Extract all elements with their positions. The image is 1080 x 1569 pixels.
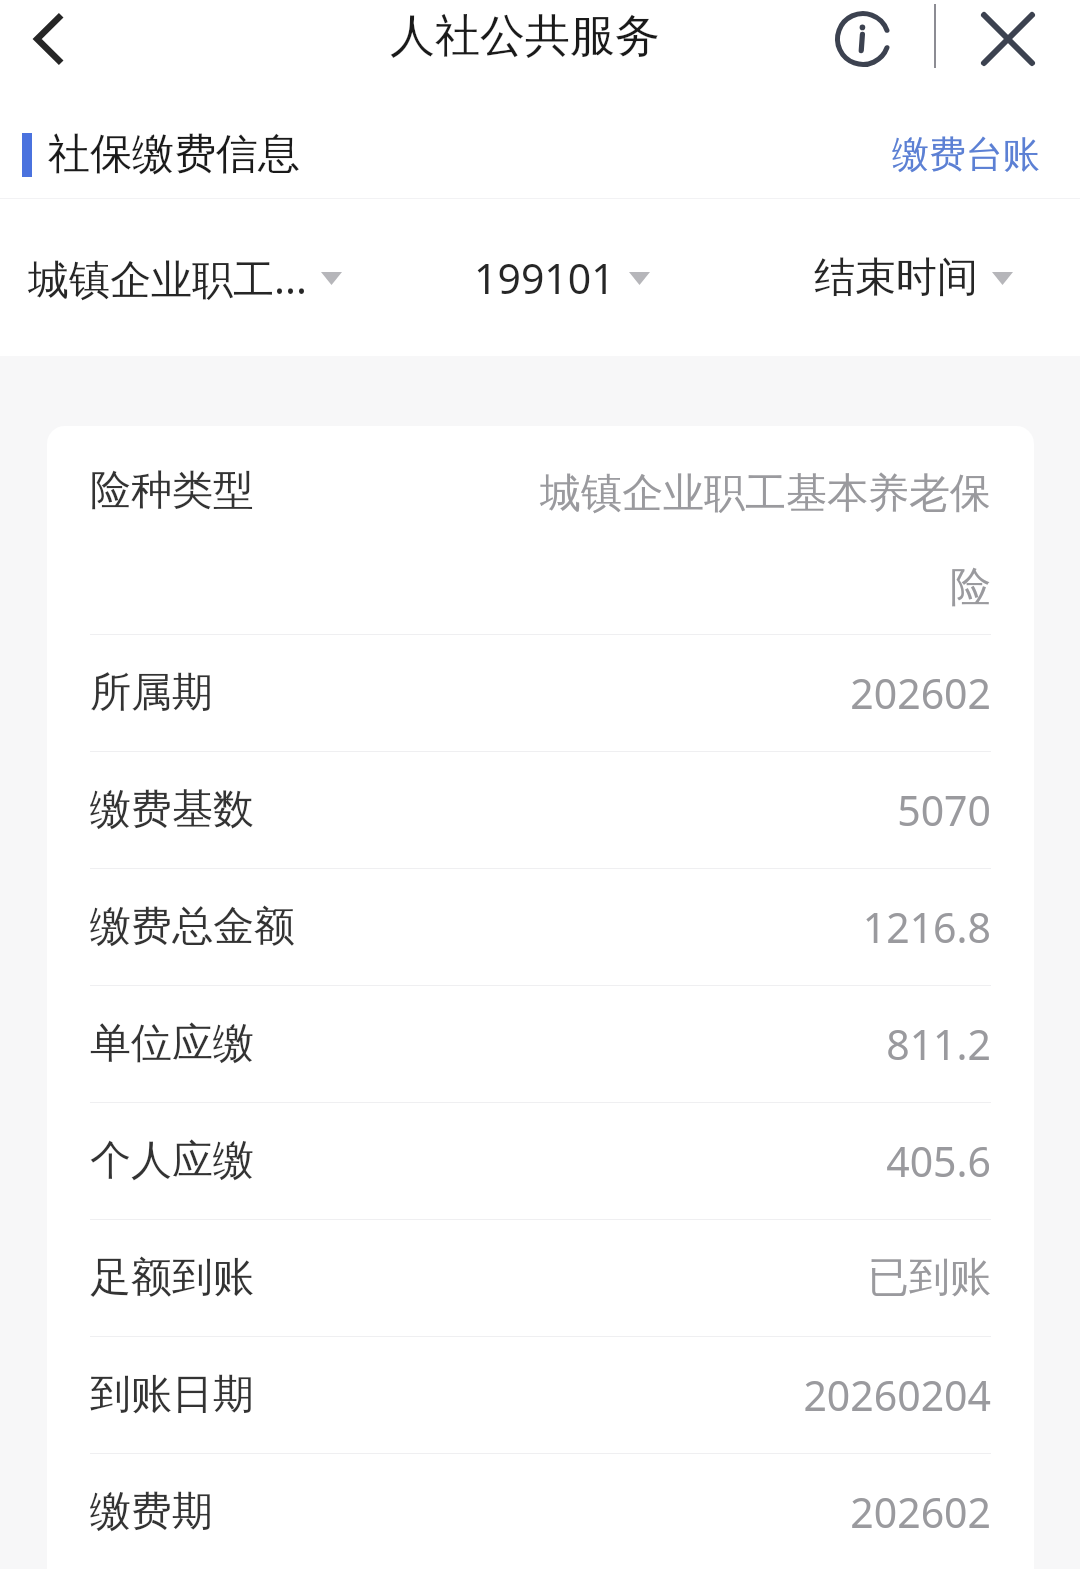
staticText: 人社公共服务	[390, 8, 660, 65]
staticText: 405.6	[886, 1133, 991, 1189]
button[interactable]: 城镇企业职工...	[26, 232, 344, 324]
staticText: 个人应缴	[90, 1135, 254, 1187]
staticText: 1216.8	[862, 899, 991, 955]
button[interactable]: Back	[8, 0, 92, 78]
staticText: 所属期	[90, 667, 213, 719]
button[interactable]: 所属期	[47, 635, 1034, 751]
staticText: 到账日期	[90, 1369, 254, 1421]
button[interactable]: 缴费基数	[47, 752, 1034, 868]
staticText: 5070	[897, 782, 991, 838]
staticText: 险种类型	[90, 465, 254, 517]
staticText: 811.2	[886, 1016, 991, 1072]
staticText: 已到账	[868, 1252, 991, 1304]
staticText: 险	[950, 562, 991, 614]
button[interactable]: 缴费总金额	[47, 869, 1034, 985]
staticText: 20260204	[803, 1367, 991, 1423]
staticText: 缴费基数	[90, 784, 254, 836]
button[interactable]: 缴费期	[47, 1454, 1034, 1569]
button[interactable]: 199101	[472, 232, 652, 324]
staticText: 单位应缴	[90, 1018, 254, 1070]
button[interactable]: 险种类型	[47, 426, 1034, 634]
staticText: 缴费台账	[892, 131, 1040, 178]
button[interactable]: 到账日期	[47, 1337, 1034, 1453]
staticText: 202602	[850, 1484, 991, 1540]
button[interactable]: 缴费台账	[852, 117, 1080, 192]
button[interactable]: 单位应缴	[47, 986, 1034, 1102]
button[interactable]: 足额到账	[47, 1220, 1034, 1336]
staticText: 足额到账	[90, 1252, 254, 1304]
button[interactable]: 个人应缴	[47, 1103, 1034, 1219]
staticText: 城镇企业职工...	[28, 250, 307, 306]
staticText: 202602	[850, 665, 991, 721]
button[interactable]: Information	[818, 0, 908, 78]
staticText: 199101	[474, 250, 615, 306]
staticText: 城镇企业职工基本养老保	[540, 468, 991, 520]
button[interactable]: Close	[960, 0, 1056, 78]
staticText: 缴费期	[90, 1486, 213, 1538]
staticText: 社保缴费信息	[48, 128, 300, 181]
button[interactable]: 结束时间	[812, 234, 1015, 322]
staticText: 结束时间	[814, 252, 978, 304]
staticText: 缴费总金额	[90, 901, 295, 953]
